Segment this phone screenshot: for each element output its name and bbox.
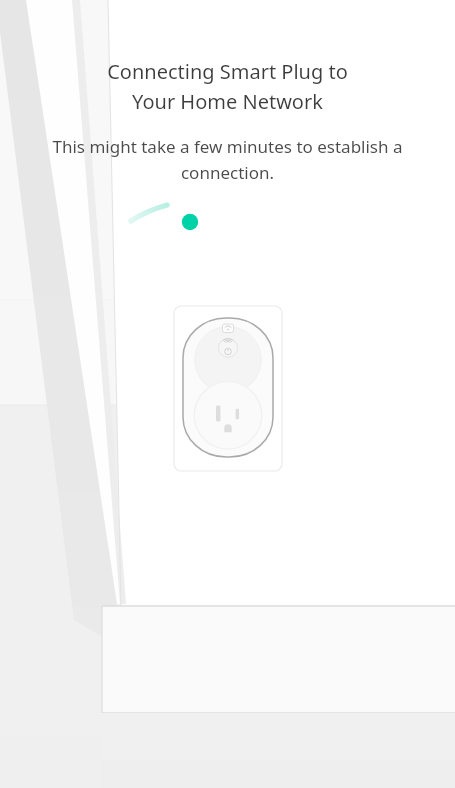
staticText: This might take a few minutes to establi… xyxy=(30,135,425,184)
staticText: Connecting Smart Plug to Your Home Netwo… xyxy=(40,58,415,115)
